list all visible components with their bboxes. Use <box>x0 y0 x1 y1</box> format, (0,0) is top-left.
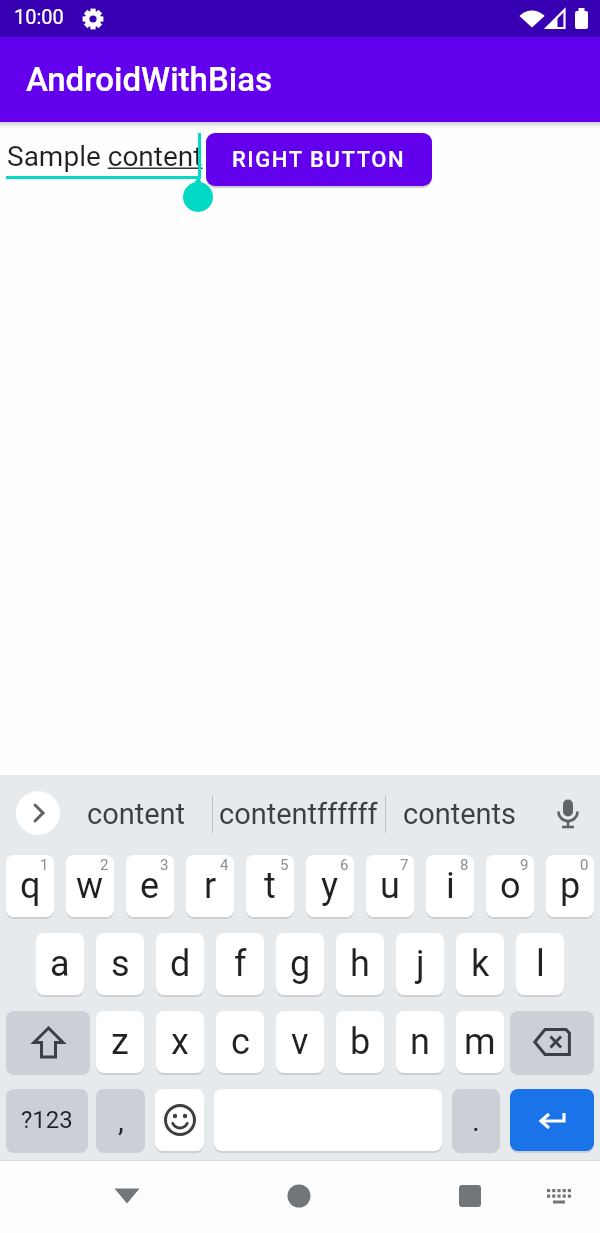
button[interactable]: p <box>546 855 594 917</box>
staticText: m <box>464 1021 496 1063</box>
button[interactable] <box>103 1172 151 1220</box>
button[interactable] <box>155 1089 204 1151</box>
staticText: contentffffff <box>219 797 378 831</box>
button[interactable]: q <box>6 855 54 917</box>
staticText: t <box>264 865 276 907</box>
button[interactable]: h <box>336 933 384 995</box>
staticText: 8 <box>460 856 469 874</box>
button[interactable]: k <box>456 933 504 995</box>
button[interactable] <box>510 1089 594 1151</box>
button[interactable] <box>275 1172 323 1220</box>
staticText: h <box>350 943 370 985</box>
staticText: 5 <box>280 856 289 874</box>
staticText: a <box>50 943 70 985</box>
staticText: , <box>118 1103 124 1138</box>
staticText: r <box>204 865 217 907</box>
button[interactable]: l <box>516 933 564 995</box>
button[interactable]: j <box>396 933 444 995</box>
button[interactable]: e <box>126 855 174 917</box>
button[interactable]: m <box>456 1011 504 1073</box>
button[interactable]: c <box>216 1011 264 1073</box>
button[interactable] <box>6 1011 90 1073</box>
button[interactable]: f <box>216 933 264 995</box>
staticText: 1 <box>40 856 49 874</box>
staticText: w <box>76 865 104 907</box>
button[interactable]: b <box>336 1011 384 1073</box>
staticText: x <box>171 1021 189 1063</box>
button[interactable] <box>446 1172 494 1220</box>
button[interactable]: w <box>66 855 114 917</box>
button[interactable] <box>535 1172 583 1220</box>
staticText: j <box>416 943 425 985</box>
staticText: c <box>231 1021 250 1063</box>
button[interactable]: . <box>452 1089 500 1151</box>
button[interactable] <box>550 797 586 833</box>
staticText: z <box>111 1021 129 1063</box>
button[interactable] <box>510 1011 594 1073</box>
button[interactable]: content <box>60 775 212 852</box>
staticText: u <box>380 865 400 907</box>
staticText: AndroidWithBias <box>26 60 273 99</box>
button[interactable]: a <box>36 933 84 995</box>
staticText: 7 <box>400 856 409 874</box>
staticText: d <box>170 943 191 985</box>
staticText: 10:00 <box>14 5 64 28</box>
staticText: s <box>111 943 130 985</box>
staticText: g <box>290 943 311 985</box>
button[interactable]: contentffffff <box>212 775 385 852</box>
button[interactable]: z <box>96 1011 144 1073</box>
button[interactable]: i <box>426 855 474 917</box>
staticText: k <box>471 943 490 985</box>
staticText: Sample content <box>7 140 203 173</box>
button[interactable]: v <box>276 1011 324 1073</box>
staticText: i <box>446 865 455 907</box>
button[interactable] <box>16 791 60 835</box>
button[interactable]: y <box>306 855 354 917</box>
staticText: f <box>234 943 247 985</box>
staticText: . <box>472 1103 480 1138</box>
button[interactable]: ?123 <box>6 1089 88 1151</box>
staticText: content <box>87 797 186 831</box>
staticText: 4 <box>220 856 229 874</box>
staticText: ?123 <box>21 1106 73 1134</box>
button[interactable]: g <box>276 933 324 995</box>
button[interactable]: d <box>156 933 204 995</box>
button[interactable]: n <box>396 1011 444 1073</box>
button[interactable]: contents <box>385 775 535 852</box>
staticText: n <box>410 1021 430 1063</box>
staticText: RIGHT BUTTON <box>232 147 406 173</box>
staticText: e <box>140 865 160 907</box>
button[interactable]: , <box>96 1089 145 1151</box>
staticText: b <box>350 1021 371 1063</box>
staticText: 0 <box>580 856 589 874</box>
staticText: 9 <box>520 856 529 874</box>
staticText: 3 <box>160 856 169 874</box>
button[interactable]: r <box>186 855 234 917</box>
staticText: 2 <box>100 856 109 874</box>
button[interactable]: o <box>486 855 534 917</box>
staticText: o <box>500 865 521 907</box>
button[interactable]: RIGHT BUTTON <box>206 133 432 186</box>
staticText: v <box>291 1021 309 1063</box>
button[interactable]: x <box>156 1011 204 1073</box>
staticText: q <box>20 865 41 907</box>
button[interactable]: u <box>366 855 414 917</box>
staticText: l <box>536 943 545 985</box>
staticText: contents <box>403 797 517 831</box>
button[interactable] <box>0 125 204 205</box>
staticText: p <box>560 865 581 907</box>
button[interactable]: s <box>96 933 144 995</box>
staticText: 6 <box>340 856 349 874</box>
button[interactable]: t <box>246 855 294 917</box>
staticText: y <box>321 865 339 907</box>
